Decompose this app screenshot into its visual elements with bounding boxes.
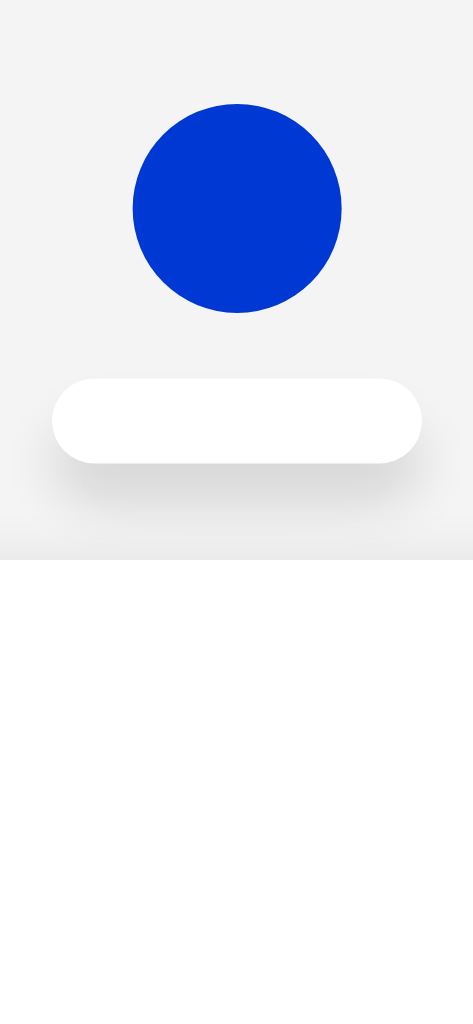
button[interactable]: Continue bbox=[52, 379, 422, 464]
button[interactable]: Brand logo bbox=[132, 103, 341, 312]
